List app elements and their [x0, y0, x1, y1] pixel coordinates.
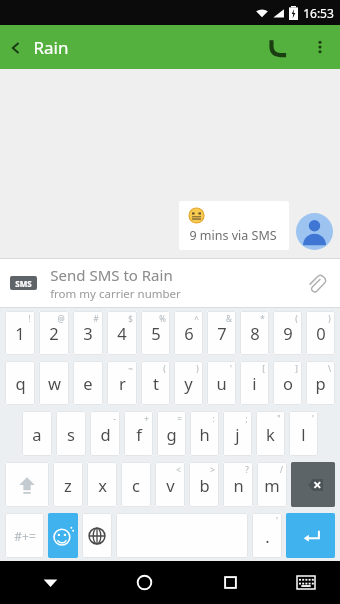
staticText: (: [163, 363, 166, 374]
staticText: q: [15, 372, 26, 394]
button[interactable]: Contact avatar: [296, 213, 333, 250]
staticText: s: [67, 423, 75, 445]
staticText: 4: [117, 322, 127, 344]
button[interactable]: 5: [141, 311, 170, 355]
button[interactable]: h: [190, 411, 219, 456]
button[interactable]: Keyboard layout: [271, 561, 340, 604]
staticText: 1: [15, 322, 25, 344]
button[interactable]: f: [124, 411, 153, 456]
button[interactable]: j: [223, 411, 252, 456]
staticText: w: [48, 372, 61, 394]
staticText: $: [128, 313, 133, 324]
staticText: :: [212, 413, 215, 424]
staticText: ": [277, 413, 281, 424]
staticText: b: [199, 474, 210, 496]
staticText: [: [262, 363, 265, 374]
button[interactable]: #+=: [5, 513, 44, 558]
button[interactable]: c: [121, 462, 151, 507]
button[interactable]: w: [39, 361, 69, 405]
staticText: %: [159, 313, 166, 324]
button[interactable]: Home: [100, 561, 189, 604]
staticText: ': [230, 363, 232, 374]
staticText: <: [176, 464, 181, 475]
button[interactable]: d: [90, 411, 120, 456]
staticText: from my carrier number: [50, 286, 181, 302]
button[interactable]: Call: [256, 25, 300, 69]
button[interactable]: u: [207, 361, 236, 405]
button[interactable]: 4: [107, 311, 137, 355]
button[interactable]: y: [174, 361, 203, 405]
button[interactable]: 1: [5, 311, 35, 355]
button[interactable]: l: [289, 411, 318, 456]
button[interactable]: 6: [174, 311, 203, 355]
staticText: 9: [283, 322, 293, 344]
staticText: r: [119, 372, 126, 394]
button[interactable]: SMS: [0, 259, 340, 307]
staticText: ]: [295, 363, 298, 374]
button[interactable]: o: [273, 361, 302, 405]
staticText: i: [252, 372, 257, 394]
button[interactable]: More options: [300, 27, 340, 67]
button[interactable]: e: [73, 361, 103, 405]
button[interactable]: x: [87, 462, 117, 507]
button[interactable]: q: [5, 361, 35, 405]
staticText: \: [328, 363, 331, 374]
staticText: !: [28, 313, 31, 324]
staticText: &: [226, 313, 232, 324]
staticText: k: [266, 423, 275, 445]
staticText: a: [32, 423, 42, 445]
staticText: f: [136, 423, 142, 445]
button[interactable]: Emoji: [48, 513, 78, 558]
button[interactable]: Shift: [5, 462, 49, 507]
staticText: t: [153, 372, 159, 394]
button[interactable]: i: [240, 361, 269, 405]
button[interactable]: Attach: [301, 268, 331, 298]
button[interactable]: m: [257, 462, 287, 507]
button[interactable]: n: [223, 462, 253, 507]
staticText: j: [235, 423, 240, 445]
button[interactable]: t: [141, 361, 170, 405]
button[interactable]: Backspace: [291, 462, 335, 507]
button[interactable]: Change language: [82, 513, 112, 558]
button[interactable]: r: [107, 361, 137, 405]
staticText: c: [132, 474, 140, 496]
button[interactable]: b: [189, 462, 219, 507]
button[interactable]: 8: [240, 311, 269, 355]
button[interactable]: p: [306, 361, 335, 405]
button[interactable]: s: [56, 411, 86, 456]
staticText: ~: [128, 363, 133, 374]
staticText: h: [199, 423, 210, 445]
staticText: 2: [49, 322, 59, 344]
button[interactable]: z: [53, 462, 83, 507]
button[interactable]: g: [157, 411, 186, 456]
button[interactable]: 9: [273, 311, 302, 355]
button[interactable]: [116, 513, 248, 558]
staticText: ': [312, 413, 314, 424]
staticText: #+=: [14, 528, 36, 544]
button[interactable]: 3: [73, 311, 103, 355]
button[interactable]: Recent apps: [189, 561, 271, 604]
button[interactable]: v: [155, 462, 185, 507]
staticText: ^: [194, 313, 199, 324]
staticText: SMS: [15, 278, 32, 289]
staticText: (: [295, 313, 298, 324]
staticText: x: [98, 474, 107, 496]
staticText: l: [301, 423, 306, 445]
button[interactable]: 2: [39, 311, 69, 355]
button[interactable]: .: [252, 513, 282, 558]
staticText: /: [280, 464, 283, 475]
button[interactable]: 0: [306, 311, 335, 355]
button[interactable]: 7: [207, 311, 236, 355]
staticText: .: [265, 525, 270, 547]
button[interactable]: Back: [0, 36, 77, 59]
button[interactable]: Hide keyboard: [0, 561, 100, 604]
staticText: *: [260, 313, 265, 324]
staticText: u: [216, 372, 227, 394]
button[interactable]: k: [256, 411, 285, 456]
staticText: z: [64, 474, 72, 496]
staticText: ': [276, 515, 278, 526]
staticText: 16:53: [303, 5, 334, 21]
button[interactable]: 9 mins via SMS: [179, 201, 289, 250]
button[interactable]: Enter: [286, 513, 335, 558]
button[interactable]: a: [22, 411, 52, 456]
